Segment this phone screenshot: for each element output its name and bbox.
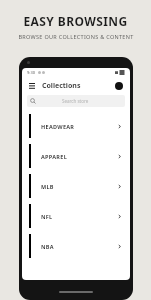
staticText: HEADWEAR <box>41 123 75 130</box>
button[interactable]: HEADWEAR <box>22 111 130 141</box>
button[interactable]: NFL <box>22 201 130 231</box>
staticText: APPAREL <box>41 153 68 160</box>
staticText: MLB <box>41 183 54 190</box>
staticText: Search store <box>62 98 89 104</box>
button[interactable]: Menu <box>27 81 37 91</box>
button[interactable]: APPAREL <box>22 141 130 171</box>
staticText: EASY BROWSING <box>23 13 128 29</box>
staticText: NFL <box>41 213 53 220</box>
staticText: NBA <box>41 243 54 250</box>
staticText: 9:30 <box>27 70 35 75</box>
button[interactable]: Account <box>113 80 125 92</box>
staticText: BROWSE OUR COLLECTIONS & CONTENT <box>18 33 134 40</box>
button[interactable]: Search store <box>27 95 125 107</box>
button[interactable]: NBA <box>22 231 130 261</box>
staticText: Collections <box>42 81 81 91</box>
button[interactable]: MLB <box>22 171 130 201</box>
